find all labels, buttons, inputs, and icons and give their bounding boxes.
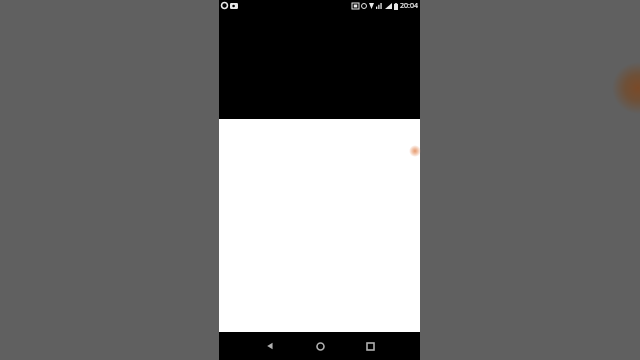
button[interactable]: Recent apps bbox=[345, 332, 395, 360]
other: Indicator bbox=[409, 145, 421, 157]
button[interactable]: Back bbox=[245, 332, 295, 360]
staticText: 20:04 bbox=[400, 1, 418, 11]
button[interactable]: Indicator bbox=[219, 119, 420, 332]
button[interactable]: Home bbox=[295, 332, 345, 360]
